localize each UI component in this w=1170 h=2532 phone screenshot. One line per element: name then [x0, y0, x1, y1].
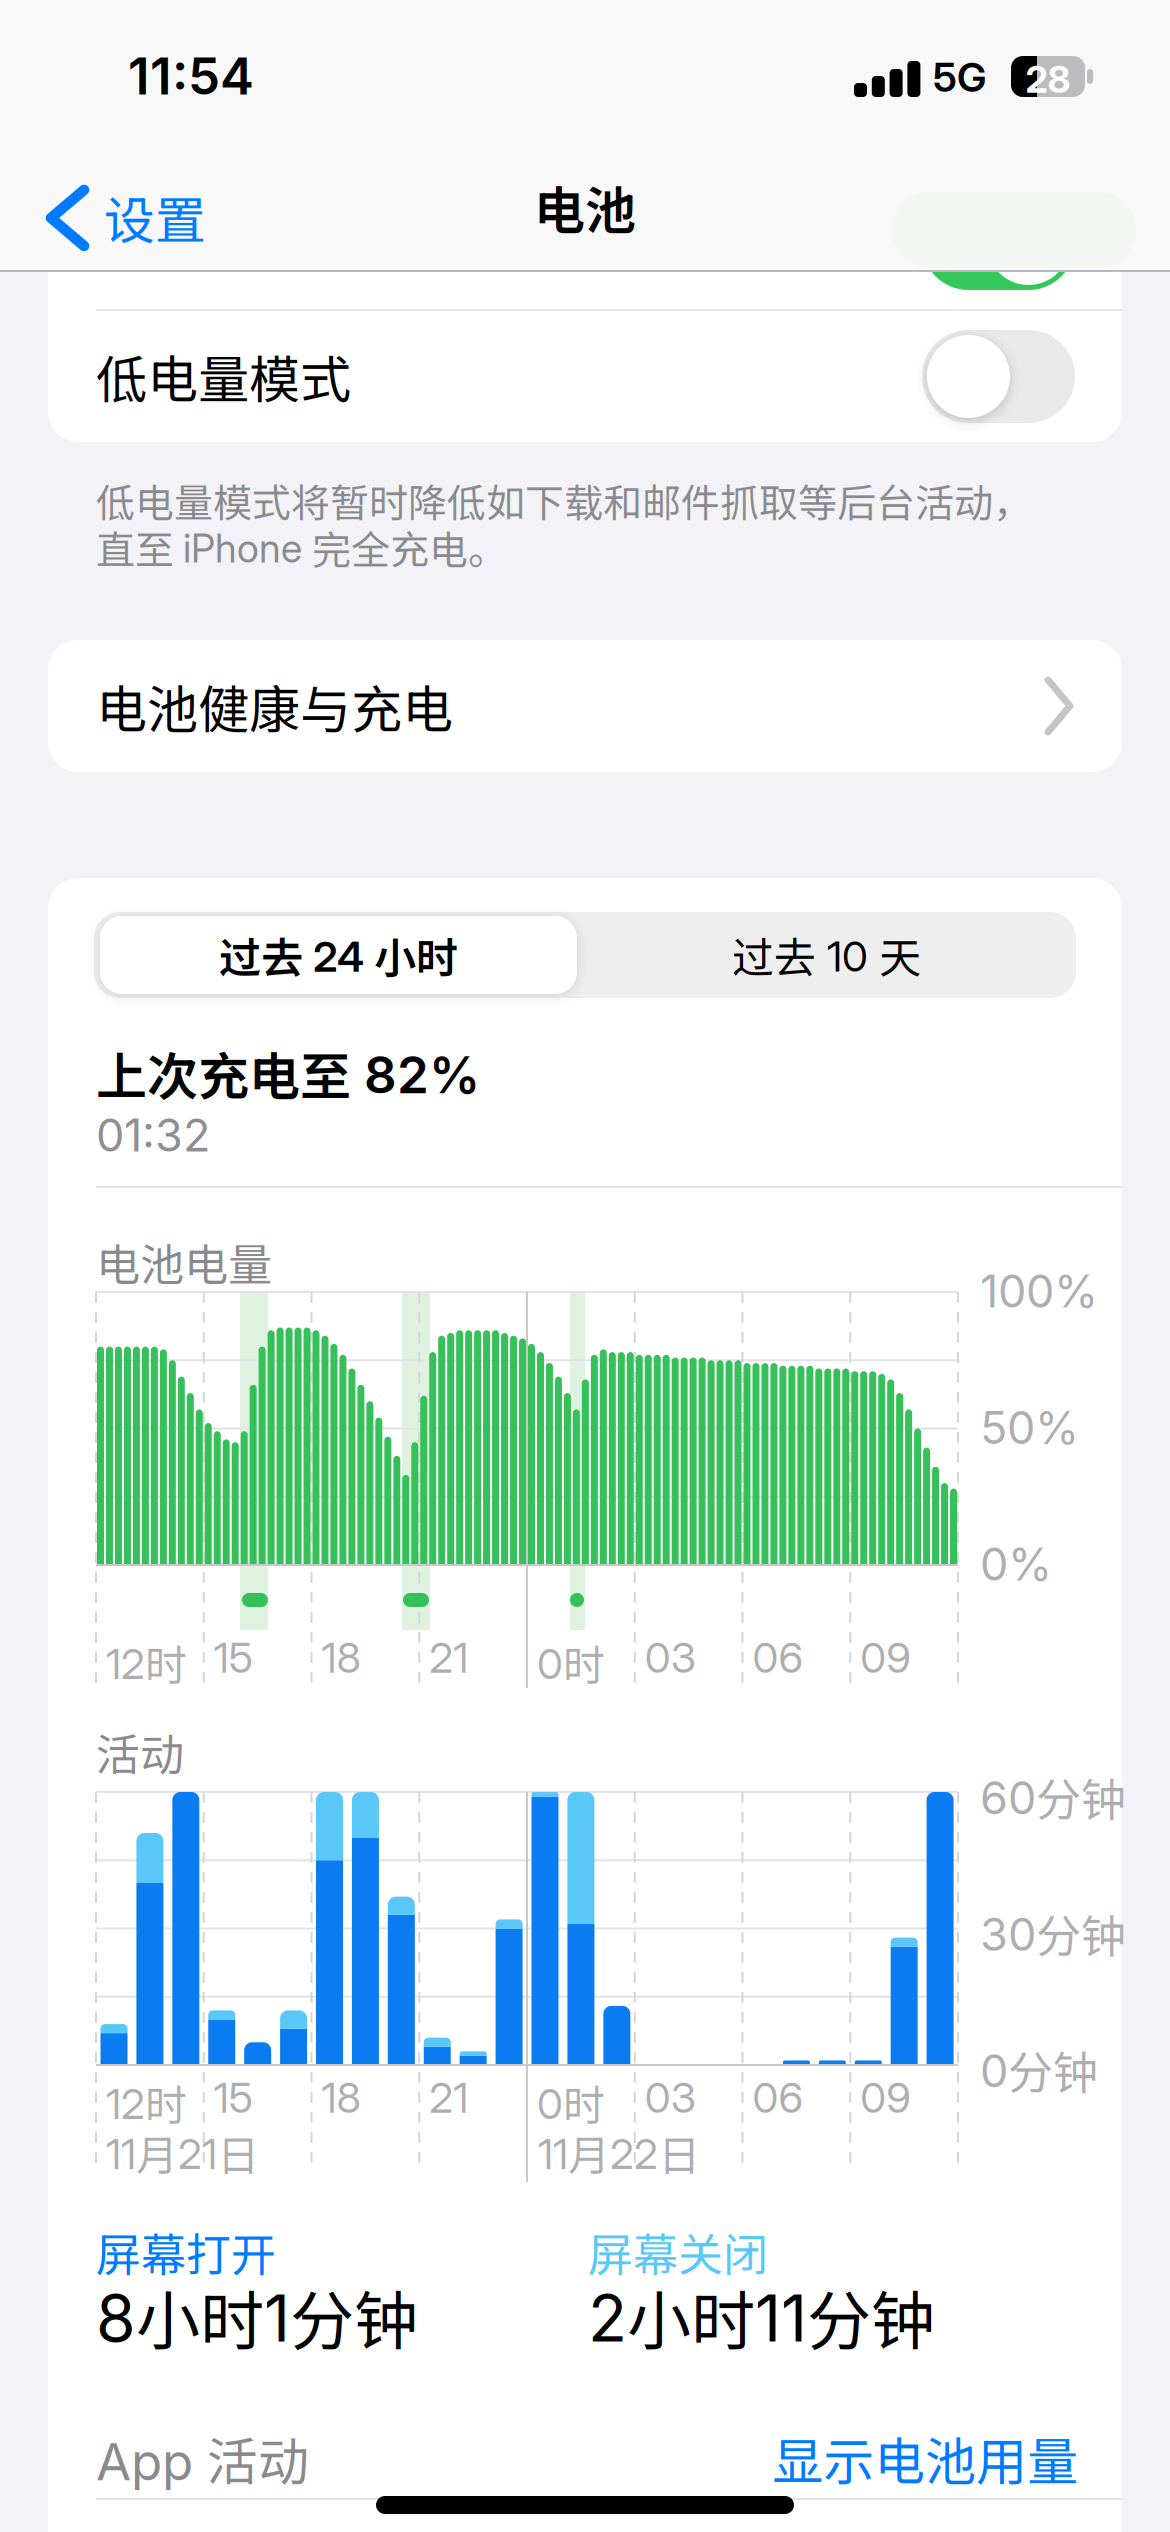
staticText: 15 [214, 2072, 253, 2123]
staticText: App 活动 [96, 2421, 309, 2495]
staticText: 15 [214, 1632, 253, 1683]
staticText: 屏幕关闭 [588, 2219, 768, 2284]
staticText: 11月21日 [106, 2122, 259, 2183]
staticText: 过去 10 天 [732, 925, 921, 985]
staticText: 低电量模式 [96, 339, 351, 413]
staticText: 电池 [534, 170, 636, 244]
staticText: 12时 [106, 1632, 187, 1693]
button[interactable]: 低电量模式 [922, 330, 1075, 423]
button[interactable]: 过去 10 天 [577, 916, 1076, 994]
staticText: 显示电池用量 [772, 2421, 1078, 2495]
staticText: 09 [860, 2072, 911, 2123]
button[interactable]: 电池百分比 [922, 197, 1075, 290]
staticText: 60分钟 [980, 1764, 1126, 1829]
staticText: 30分钟 [980, 1900, 1126, 1966]
staticText: 100% [980, 1264, 1098, 1318]
button[interactable]: 过去 24 小时 [100, 916, 577, 994]
staticText: 01:32 [96, 1108, 210, 1162]
staticText: 09 [860, 1632, 911, 1683]
staticText: 06 [752, 1632, 803, 1683]
staticText: 8小时1分钟 [96, 2270, 418, 2363]
staticText: 18 [321, 1632, 360, 1683]
staticText: 0时 [537, 2072, 605, 2133]
staticText: 上次充电至 82% [96, 1036, 480, 1110]
staticText: 03 [645, 2072, 696, 2123]
staticText: 18 [321, 2072, 360, 2123]
staticText: 2小时11分钟 [588, 2270, 935, 2363]
button[interactable]: 设置 [44, 180, 206, 254]
button[interactable]: 显示电池用量 [772, 2421, 1078, 2495]
staticText: 06 [752, 2072, 803, 2123]
staticText: 过去 24 小时 [219, 925, 458, 985]
staticText: 50% [980, 1400, 1079, 1455]
staticText: 0分钟 [980, 2037, 1098, 2102]
staticText: 0时 [537, 1632, 605, 1693]
staticText: 直至 iPhone 完全充电。 [96, 519, 507, 575]
staticText: 0% [980, 1537, 1052, 1591]
staticText: 设置 [104, 180, 206, 254]
staticText: 21 [429, 2072, 468, 2123]
staticText: 电池电量 [96, 1230, 272, 1294]
staticText: 28 [1025, 57, 1070, 102]
staticText: 11月22日 [538, 2122, 700, 2183]
staticText: 11:54 [128, 45, 254, 107]
staticText: 5G [933, 53, 986, 101]
staticText: 电池健康与充电 [96, 669, 453, 743]
button[interactable]: 电池健康与充电 [48, 640, 1122, 772]
staticText: 屏幕打开 [96, 2219, 276, 2284]
staticText: 活动 [96, 1720, 184, 1784]
staticText: 03 [645, 1632, 696, 1683]
staticText: 12时 [106, 2072, 187, 2133]
staticText: 21 [429, 1632, 468, 1683]
staticText: 低电量模式将暂时降低如下载和邮件抓取等后台活动， [96, 472, 1032, 528]
